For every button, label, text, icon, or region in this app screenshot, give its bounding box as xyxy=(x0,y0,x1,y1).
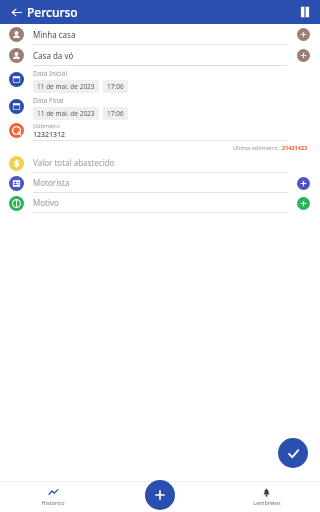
staticText: Odômetro xyxy=(33,122,60,129)
staticText: 12321312 xyxy=(33,130,66,140)
staticText: Motorista xyxy=(33,177,70,188)
button[interactable]: Confirmar xyxy=(278,438,308,468)
button[interactable]: Adicionar xyxy=(297,49,310,62)
button[interactable]: 11 de mai. de 2023 xyxy=(37,82,95,91)
staticText: 11 de mai. de 2023 xyxy=(37,82,95,91)
button[interactable]: Voltar xyxy=(6,2,26,22)
button[interactable]: Adicionar Motivo xyxy=(297,197,310,210)
staticText: Histórico xyxy=(41,499,65,506)
button[interactable]: Minha casa xyxy=(0,24,320,45)
staticText: 17:06 xyxy=(107,109,124,118)
button[interactable]: Data Inicial xyxy=(0,66,320,93)
staticText: Casa da vó xyxy=(33,50,74,61)
staticText: Data Final xyxy=(33,96,64,105)
button[interactable]: Odômetro xyxy=(0,120,320,141)
button[interactable]: Mapa xyxy=(295,2,315,22)
button[interactable]: 11 de mai. de 2023 xyxy=(37,109,95,118)
staticText: Valor total abastecido xyxy=(33,157,115,168)
staticText: Lembretes xyxy=(253,499,281,506)
staticText: Data Inicial xyxy=(33,69,68,78)
button[interactable]: Adicionar Motorista xyxy=(297,177,310,190)
staticText: Motivo xyxy=(33,197,59,208)
button[interactable]: Histórico xyxy=(0,481,106,512)
button[interactable]: Motorista xyxy=(0,173,320,193)
staticText: Última odômetro: xyxy=(233,144,279,151)
button[interactable]: Data Final xyxy=(0,93,320,120)
button[interactable]: Casa da vó xyxy=(0,45,320,66)
button[interactable]: Adicionar xyxy=(297,28,310,41)
button[interactable]: Lembretes xyxy=(213,481,320,512)
staticText: 11 de mai. de 2023 xyxy=(37,109,95,118)
staticText: 21421423 xyxy=(282,144,308,151)
button[interactable]: 17:06 xyxy=(107,109,124,118)
staticText: 17:06 xyxy=(107,82,124,91)
staticText: Minha casa xyxy=(33,29,76,40)
staticText: Percurso xyxy=(27,4,78,20)
button[interactable]: 17:06 xyxy=(107,82,124,91)
button[interactable]: Valor total abastecido xyxy=(0,153,320,173)
button[interactable]: Adicionar xyxy=(145,480,175,510)
button[interactable]: Motivo xyxy=(0,193,320,213)
